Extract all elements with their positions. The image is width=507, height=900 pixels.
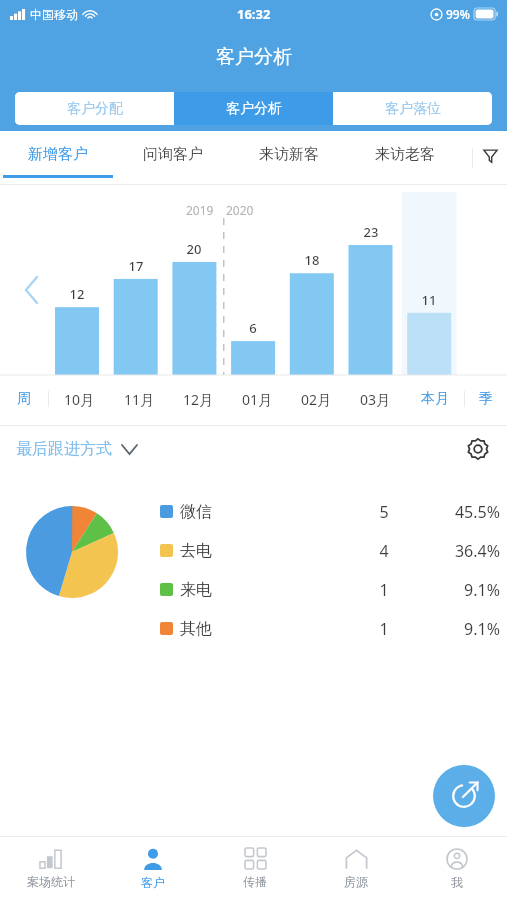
staticText: 45.5% — [414, 501, 500, 523]
staticText: 11月 — [124, 390, 155, 409]
button[interactable]: 01月 — [228, 381, 287, 417]
staticText: 中国移动 — [30, 7, 78, 22]
button[interactable]: Share — [433, 765, 495, 827]
button[interactable]: 新增客户 — [0, 131, 115, 184]
button[interactable]: 问询客户 — [115, 131, 231, 184]
button[interactable]: 02月 — [287, 381, 346, 417]
staticText: 12月 — [183, 390, 214, 409]
staticText: 客户落位 — [385, 100, 441, 118]
button[interactable]: 客户分析 — [174, 92, 333, 125]
staticText: 2020 — [226, 202, 254, 218]
staticText: 02月 — [301, 390, 332, 409]
button[interactable]: 客户分配 — [15, 92, 174, 125]
button[interactable]: 我 — [406, 837, 507, 900]
staticText: 23 — [355, 223, 387, 241]
staticText: 其他 — [180, 619, 212, 639]
staticText: 01月 — [242, 390, 273, 409]
staticText: 1 — [354, 579, 414, 601]
button[interactable]: 其他 — [160, 609, 500, 648]
staticText: 36.4% — [414, 540, 500, 562]
staticText: 周 — [17, 390, 31, 408]
staticText: 传播 — [243, 874, 267, 889]
staticText: 20 — [178, 240, 210, 258]
staticText: 季 — [479, 390, 493, 408]
staticText: 10月 — [64, 390, 95, 409]
staticText: 17 — [120, 257, 152, 275]
button[interactable]: 最后跟进方式 — [16, 439, 137, 459]
staticText: 03月 — [360, 390, 391, 409]
staticText: 11 — [413, 291, 445, 309]
button[interactable]: 11月 — [109, 381, 169, 417]
button[interactable]: 去电 — [160, 531, 500, 570]
button[interactable]: 客户 — [102, 837, 204, 900]
staticText: 房源 — [344, 874, 368, 889]
staticText: 案场统计 — [27, 874, 75, 889]
staticText: 5 — [354, 501, 414, 523]
button[interactable]: Filter — [463, 131, 507, 184]
staticText: 来访新客 — [259, 145, 319, 164]
staticText: 去电 — [180, 541, 212, 561]
button[interactable]: 来访老客 — [347, 131, 463, 184]
staticText: 1 — [354, 618, 414, 640]
button[interactable]: 来电 — [160, 570, 500, 609]
staticText: 客户 — [141, 875, 165, 890]
staticText: 18 — [296, 251, 328, 269]
button[interactable]: 本月 — [405, 381, 464, 417]
button[interactable]: 12月 — [169, 381, 228, 417]
button[interactable]: 10月 — [49, 381, 109, 417]
button[interactable]: 季 — [465, 381, 507, 417]
button[interactable]: 来访新客 — [231, 131, 347, 184]
staticText: 本月 — [421, 390, 449, 408]
staticText: 微信 — [180, 502, 212, 522]
button[interactable]: 房源 — [305, 837, 406, 900]
button[interactable]: 03月 — [346, 381, 405, 417]
button[interactable]: 案场统计 — [0, 837, 102, 900]
staticText: 12 — [61, 285, 93, 303]
staticText: 客户分析 — [216, 45, 292, 69]
staticText: 新增客户 — [28, 145, 88, 164]
button[interactable]: 传播 — [204, 837, 305, 900]
staticText: 6 — [237, 319, 269, 337]
staticText: 客户分析 — [226, 100, 282, 118]
staticText: 9.1% — [414, 579, 500, 601]
button[interactable]: 微信 — [160, 492, 500, 531]
button[interactable]: Settings — [465, 436, 491, 462]
staticText: 2019 — [186, 202, 214, 218]
staticText: 客户分配 — [67, 100, 123, 118]
staticText: 问询客户 — [143, 145, 203, 164]
staticText: 9.1% — [414, 618, 500, 640]
staticText: 99% — [446, 6, 470, 22]
staticText: 4 — [354, 540, 414, 562]
button[interactable]: 客户落位 — [333, 92, 492, 125]
staticText: 最后跟进方式 — [16, 439, 112, 459]
button[interactable]: 周 — [0, 381, 48, 417]
staticText: 我 — [451, 875, 463, 890]
staticText: 来访老客 — [375, 145, 435, 164]
staticText: 16:32 — [237, 5, 271, 23]
staticText: 来电 — [180, 580, 212, 600]
